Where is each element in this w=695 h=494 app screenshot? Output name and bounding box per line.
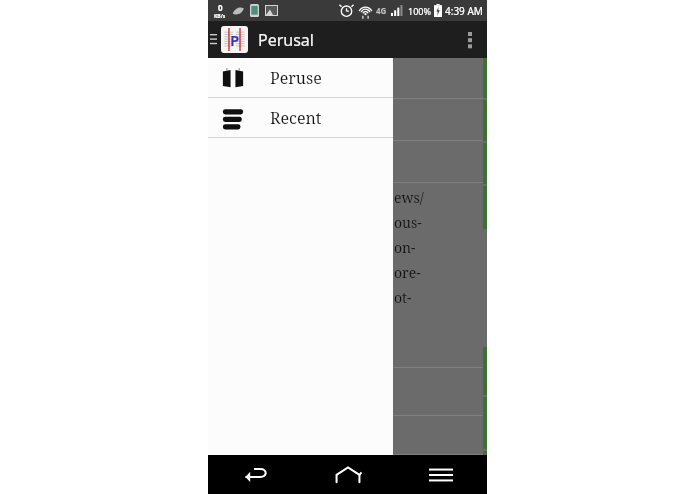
button[interactable]: Recent apps bbox=[394, 455, 487, 494]
staticText: ews/ bbox=[394, 188, 424, 207]
staticText: on- bbox=[394, 238, 416, 257]
staticText: 4:39 AM bbox=[445, 4, 483, 18]
button[interactable]: Home bbox=[301, 455, 394, 494]
button[interactable]: Perusal bbox=[221, 26, 248, 53]
staticText: 0 bbox=[218, 2, 223, 13]
staticText: Perusal bbox=[258, 29, 314, 51]
staticText: ot- bbox=[394, 288, 412, 307]
button[interactable]: Recent bbox=[208, 98, 393, 137]
staticText: ore- bbox=[394, 263, 421, 282]
staticText: 100% bbox=[408, 5, 431, 17]
staticText: 4G bbox=[376, 5, 387, 16]
button[interactable]: Back bbox=[208, 455, 301, 494]
staticText: P bbox=[230, 30, 240, 50]
staticText: Recent bbox=[270, 107, 322, 129]
staticText: KB/s bbox=[214, 13, 226, 20]
staticText: ous- bbox=[394, 213, 422, 232]
button[interactable]: Open navigation drawer bbox=[208, 21, 218, 58]
staticText: Peruse bbox=[270, 67, 322, 89]
button[interactable]: Peruse bbox=[208, 58, 393, 97]
button[interactable]: More options bbox=[453, 21, 487, 58]
